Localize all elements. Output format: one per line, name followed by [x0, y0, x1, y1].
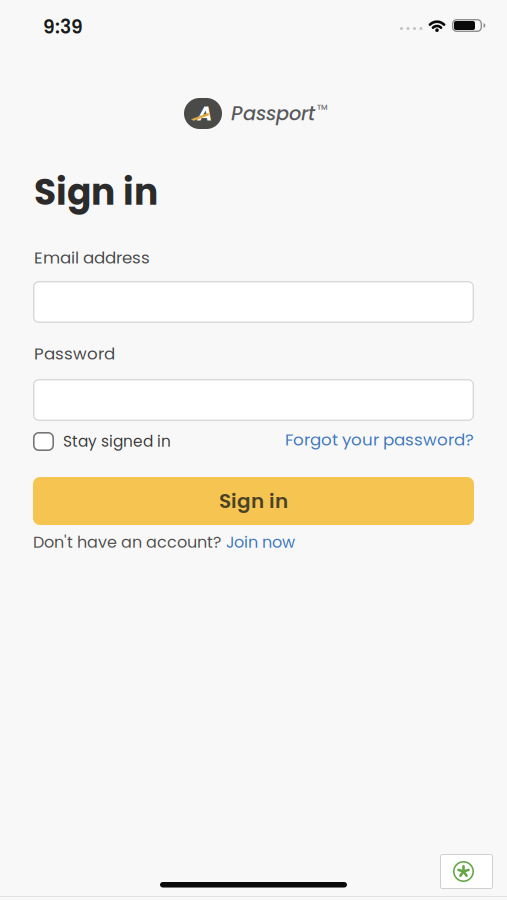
button[interactable]: Forgot your password?	[285, 428, 474, 451]
button[interactable]: Password	[33, 379, 474, 421]
staticText: TM	[317, 102, 328, 112]
staticText: Sign in	[34, 167, 158, 217]
button[interactable]: Email address	[33, 281, 474, 323]
button[interactable]: Sign in	[33, 477, 474, 525]
button[interactable]: Stay signed in	[33, 432, 171, 451]
staticText: Join now	[226, 531, 295, 553]
button[interactable]: Accessibility options	[440, 854, 493, 889]
staticText: 9:39	[43, 14, 83, 40]
staticText: Forgot your password?	[285, 428, 474, 451]
staticText: Sign in	[219, 487, 288, 515]
button[interactable]: Join now	[226, 531, 295, 553]
staticText: Email address	[34, 246, 150, 269]
staticText: A	[197, 99, 212, 127]
staticText: Stay signed in	[63, 431, 171, 452]
staticText: Passport	[231, 100, 315, 127]
staticText: Don't have an account?	[33, 531, 221, 553]
staticText: Password	[34, 342, 115, 365]
